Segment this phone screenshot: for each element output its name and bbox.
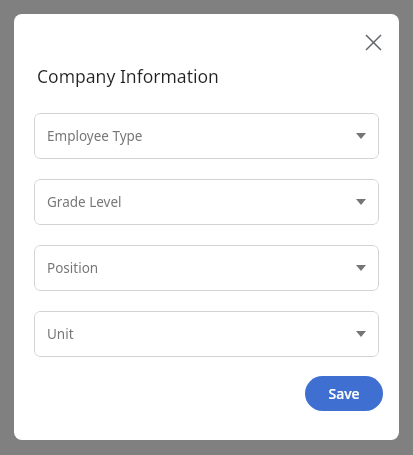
staticText: Unit [47, 325, 74, 343]
button[interactable]: Unit [34, 311, 379, 357]
button[interactable]: Employee Type [34, 113, 379, 159]
staticText: Employee Type [47, 127, 143, 145]
staticText: Position [47, 259, 99, 277]
staticText: Company Information [37, 64, 219, 88]
staticText: Grade Level [47, 193, 122, 211]
staticText: Save [328, 384, 360, 403]
button[interactable]: Save [305, 376, 383, 411]
button[interactable]: Position [34, 245, 379, 291]
button[interactable]: Grade Level [34, 179, 379, 225]
button[interactable]: Close [357, 26, 389, 58]
